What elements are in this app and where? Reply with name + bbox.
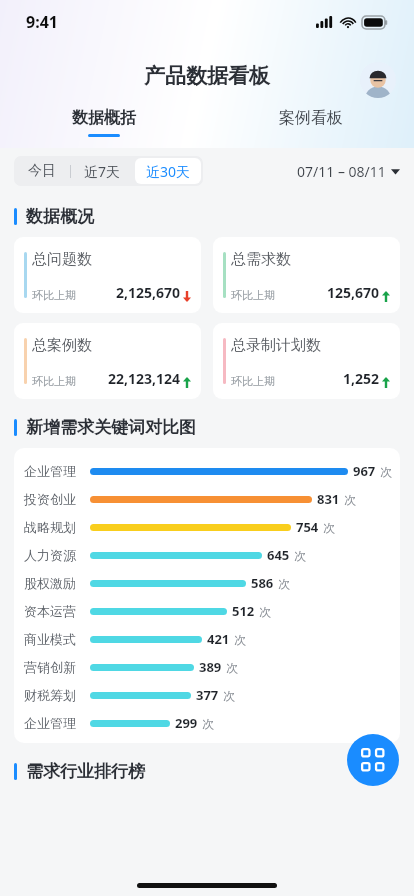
staticText: 数据概括 [72,108,136,128]
staticText: 环比上期 [231,288,275,302]
staticText: 389 [199,658,222,676]
button[interactable]: 总需求数 [213,237,400,313]
staticText: 人力资源 [24,547,84,563]
staticText: 07/11 – 08/11 [297,162,386,181]
button[interactable]: Apps menu [347,734,399,786]
button[interactable]: 数据概括 [0,108,207,148]
staticText: 近7天 [84,162,121,181]
staticText: 次 [234,632,246,647]
staticText: 商业模式 [24,631,84,647]
staticText: 645 [267,546,290,564]
staticText: 22,123,124 [108,369,181,388]
staticText: 近30天 [146,162,191,181]
staticText: 299 [175,714,198,732]
staticText: 次 [259,604,271,619]
staticText: 投资创业 [24,491,84,507]
staticText: 次 [278,576,290,591]
staticText: 资本运营 [24,603,84,619]
staticText: 案例看板 [279,108,343,128]
button[interactable]: 近7天 [71,156,133,186]
staticText: 企业管理 [24,463,84,479]
staticText: 总需求数 [231,250,291,269]
staticText: 次 [202,716,214,731]
button[interactable]: 今日 [14,156,70,186]
staticText: 股权激励 [24,575,84,591]
staticText: 125,670 [327,283,380,302]
staticText: 次 [344,492,356,507]
staticText: 总问题数 [32,250,92,269]
staticText: 次 [323,520,335,535]
staticText: 环比上期 [32,288,76,302]
staticText: 环比上期 [231,374,275,388]
button[interactable]: 案例看板 [207,108,414,148]
button[interactable]: 总案例数 [14,323,201,399]
staticText: 次 [380,464,392,479]
button[interactable]: 总问题数 [14,237,201,313]
staticText: 环比上期 [32,374,76,388]
staticText: 754 [296,518,319,536]
staticText: 831 [317,490,340,508]
staticText: 新增需求关键词对比图 [26,417,196,438]
staticText: 586 [251,574,274,592]
button[interactable]: 总录制计划数 [213,323,400,399]
staticText: 1,252 [343,369,380,388]
staticText: 377 [196,686,219,704]
staticText: 次 [223,688,235,703]
staticText: 总案例数 [32,336,92,355]
staticText: 营销创新 [24,659,84,675]
button[interactable]: 07/11 – 08/11 [297,162,400,181]
staticText: 产品数据看板 [144,63,270,89]
staticText: 次 [226,660,238,675]
staticText: 2,125,670 [116,283,181,302]
staticText: 数据概况 [26,206,94,227]
staticText: 战略规划 [24,519,84,535]
staticText: 今日 [28,162,56,180]
staticText: 企业管理 [24,715,84,731]
staticText: 967 [353,462,376,480]
staticText: 次 [294,548,306,563]
staticText: 9:41 [26,11,58,33]
staticText: 需求行业排行榜 [26,761,145,782]
staticText: 财税筹划 [24,687,84,703]
button[interactable]: 近30天 [135,158,201,184]
staticText: 421 [207,630,230,648]
button[interactable]: Profile [360,62,396,98]
staticText: 总录制计划数 [231,336,321,355]
staticText: 512 [232,602,255,620]
